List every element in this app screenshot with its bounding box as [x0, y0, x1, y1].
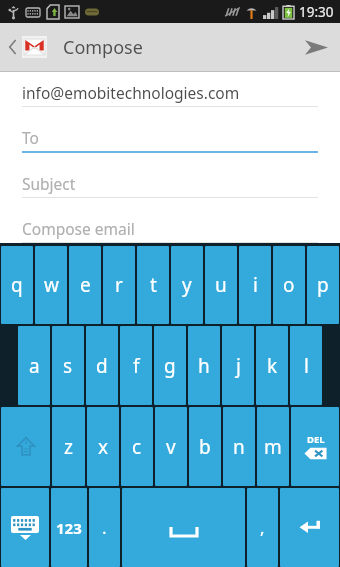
button[interactable]: Subject	[0, 170, 340, 198]
staticText: ,	[260, 516, 265, 539]
button[interactable]: x	[87, 407, 119, 486]
staticText: o	[283, 272, 295, 298]
staticText: l	[304, 353, 309, 379]
staticText: w	[44, 272, 59, 298]
button[interactable]: Enter	[280, 488, 339, 567]
button[interactable]: t	[137, 246, 169, 324]
button[interactable]: Compose email	[0, 215, 340, 243]
button[interactable]: p	[307, 246, 339, 324]
staticText: v	[166, 434, 176, 460]
button[interactable]: s	[52, 326, 84, 405]
staticText: To	[22, 127, 39, 148]
button[interactable]: j	[222, 326, 254, 405]
button[interactable]: .	[89, 488, 120, 567]
staticText: q	[11, 272, 23, 298]
staticText: m	[264, 434, 282, 460]
staticText: z	[64, 434, 73, 460]
button[interactable]: v	[155, 407, 187, 486]
button[interactable]: o	[273, 246, 305, 324]
button[interactable]: c	[121, 407, 153, 486]
staticText: n	[233, 434, 245, 460]
button[interactable]: k	[256, 326, 288, 405]
button[interactable]: f	[120, 326, 152, 405]
staticText: r	[115, 272, 123, 298]
button[interactable]: Delete	[291, 407, 339, 486]
button[interactable]: q	[1, 246, 33, 324]
button[interactable]: g	[154, 326, 186, 405]
button[interactable]: Send	[292, 23, 340, 71]
staticText: x	[98, 434, 109, 460]
button[interactable]: n	[223, 407, 255, 486]
staticText: Compose email	[22, 218, 135, 239]
button[interactable]: m	[257, 407, 289, 486]
button[interactable]: Hide keyboard	[1, 488, 49, 567]
button[interactable]: ,	[247, 488, 278, 567]
staticText: DEL	[307, 433, 325, 446]
staticText: a	[29, 353, 40, 379]
staticText: 123	[56, 518, 82, 538]
button[interactable]: a	[18, 326, 50, 405]
button[interactable]: Space	[122, 488, 245, 567]
button[interactable]: i	[239, 246, 271, 324]
button[interactable]: Numbers	[51, 488, 87, 567]
staticText: j	[236, 353, 241, 379]
staticText: c	[132, 434, 142, 460]
staticText: y	[182, 272, 192, 298]
staticText: b	[199, 434, 211, 460]
button[interactable]: y	[171, 246, 203, 324]
button[interactable]: b	[189, 407, 221, 486]
staticText: d	[96, 353, 108, 379]
button[interactable]: w	[35, 246, 67, 324]
staticText: t	[150, 272, 157, 298]
staticText: s	[63, 353, 73, 379]
button[interactable]: r	[103, 246, 135, 324]
button[interactable]: To	[0, 124, 340, 153]
staticText: Compose	[63, 35, 143, 60]
button[interactable]: Shift	[1, 407, 50, 486]
button[interactable]: u	[205, 246, 237, 324]
staticText: g	[164, 353, 176, 379]
staticText: f	[133, 353, 140, 379]
staticText: info@emobitechnologies.com	[22, 82, 240, 103]
button[interactable]: h	[188, 326, 220, 405]
button[interactable]: l	[290, 326, 322, 405]
staticText: 19:30	[299, 3, 334, 21]
button[interactable]: Navigate up	[0, 23, 51, 71]
staticText: Subject	[22, 173, 76, 194]
staticText: .	[102, 516, 107, 539]
staticText: u	[215, 272, 227, 298]
button[interactable]: info@emobitechnologies.com	[0, 79, 340, 107]
staticText: p	[317, 272, 329, 298]
staticText: i	[253, 272, 258, 298]
button[interactable]: d	[86, 326, 118, 405]
staticText: h	[198, 353, 210, 379]
button[interactable]: z	[52, 407, 85, 486]
button[interactable]: e	[69, 246, 101, 324]
staticText: e	[80, 272, 91, 298]
staticText: k	[267, 353, 278, 379]
